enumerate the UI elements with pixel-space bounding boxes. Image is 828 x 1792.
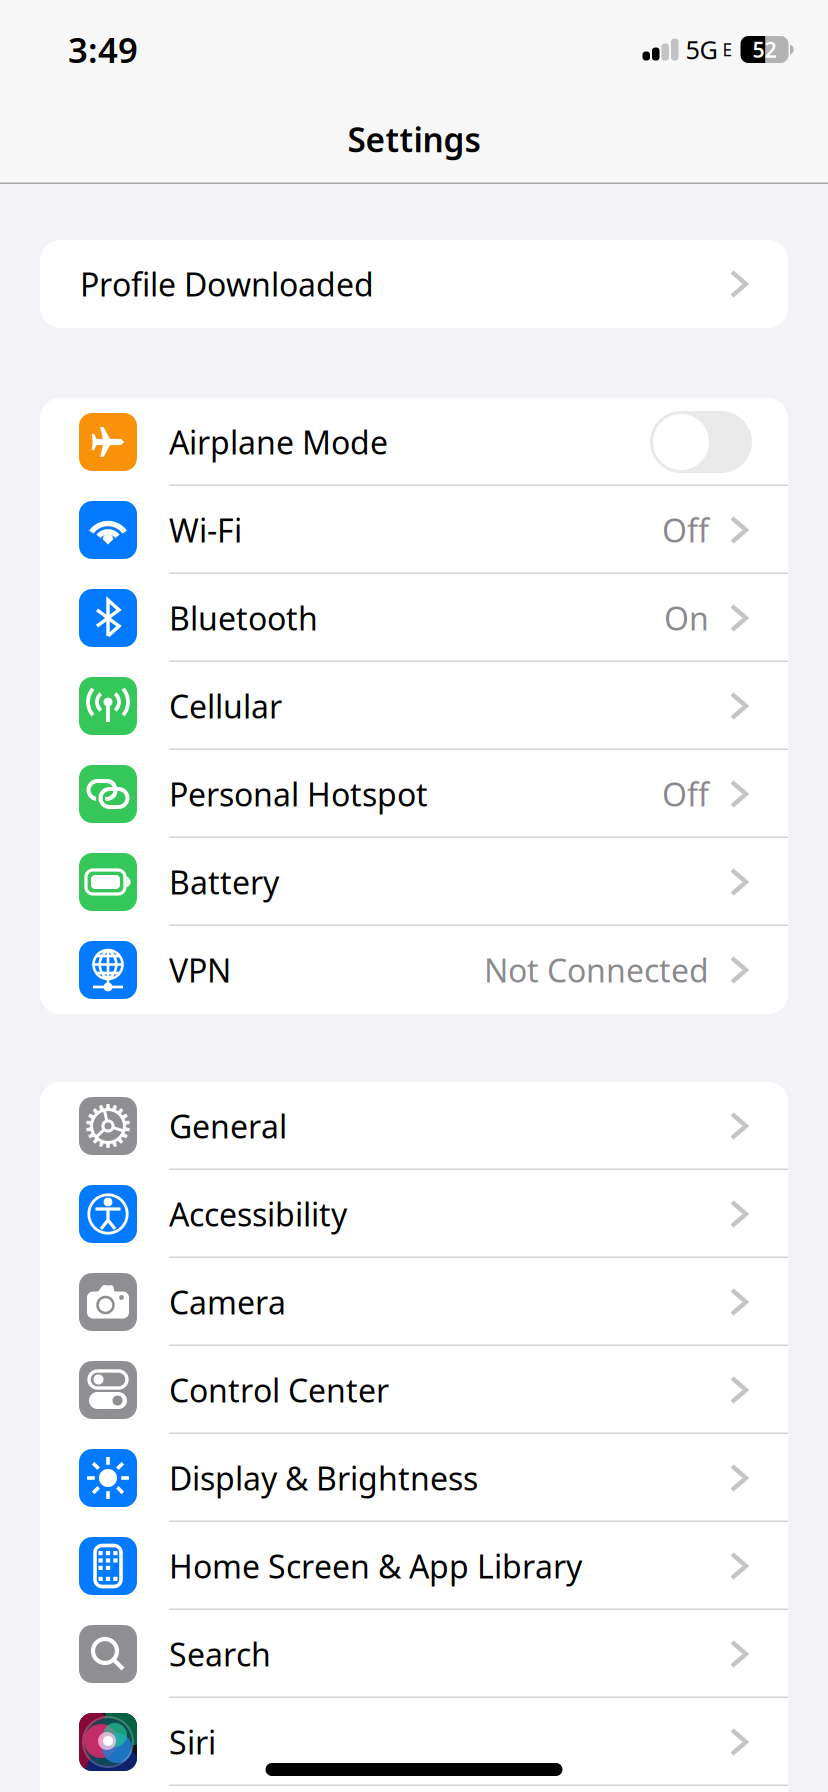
staticText: Airplane Mode	[169, 421, 388, 463]
staticText: Off	[662, 773, 709, 815]
staticText: Not Connected	[484, 949, 709, 991]
staticText: Home Screen & App Library	[169, 1545, 582, 1587]
staticText: Camera	[169, 1281, 286, 1323]
button[interactable]: VPN	[40, 926, 788, 1014]
button[interactable]: Battery	[40, 838, 788, 926]
staticText: VPN	[169, 949, 231, 991]
staticText: Settings	[347, 117, 480, 161]
button[interactable]: Search	[40, 1610, 788, 1698]
staticText: Siri	[169, 1721, 216, 1763]
staticText: On	[664, 597, 709, 639]
staticText: Accessibility	[169, 1193, 347, 1235]
staticText: Personal Hotspot	[169, 773, 428, 815]
staticText: Battery	[169, 861, 279, 903]
button[interactable]: Home Screen & App Library	[40, 1522, 788, 1610]
button[interactable]: Cellular	[40, 662, 788, 750]
button[interactable]: Accessibility	[40, 1170, 788, 1258]
button[interactable]: Display & Brightness	[40, 1434, 788, 1522]
staticText: E	[722, 38, 732, 61]
button[interactable]: Bluetooth	[40, 574, 788, 662]
staticText: General	[169, 1105, 287, 1147]
button[interactable]: Airplane Mode	[40, 398, 788, 486]
staticText: Wi-Fi	[169, 509, 242, 551]
staticText: 5G	[685, 33, 717, 66]
button[interactable]: Siri	[40, 1698, 788, 1786]
staticText: Control Center	[169, 1369, 389, 1411]
staticText: Profile Downloaded	[80, 263, 374, 305]
staticText: Off	[662, 509, 709, 551]
button[interactable]: Profile Downloaded	[40, 240, 788, 328]
staticText: Search	[169, 1633, 271, 1675]
staticText: 52	[752, 35, 776, 64]
staticText: Display & Brightness	[169, 1457, 478, 1499]
button[interactable]: General	[40, 1082, 788, 1170]
button[interactable]: Camera	[40, 1258, 788, 1346]
staticText: Bluetooth	[169, 597, 318, 639]
button[interactable]: Wi-Fi	[40, 486, 788, 574]
staticText: Cellular	[169, 685, 282, 727]
button[interactable]: Control Center	[40, 1346, 788, 1434]
button[interactable]: Personal Hotspot	[40, 750, 788, 838]
staticText: 3:49	[68, 26, 138, 72]
